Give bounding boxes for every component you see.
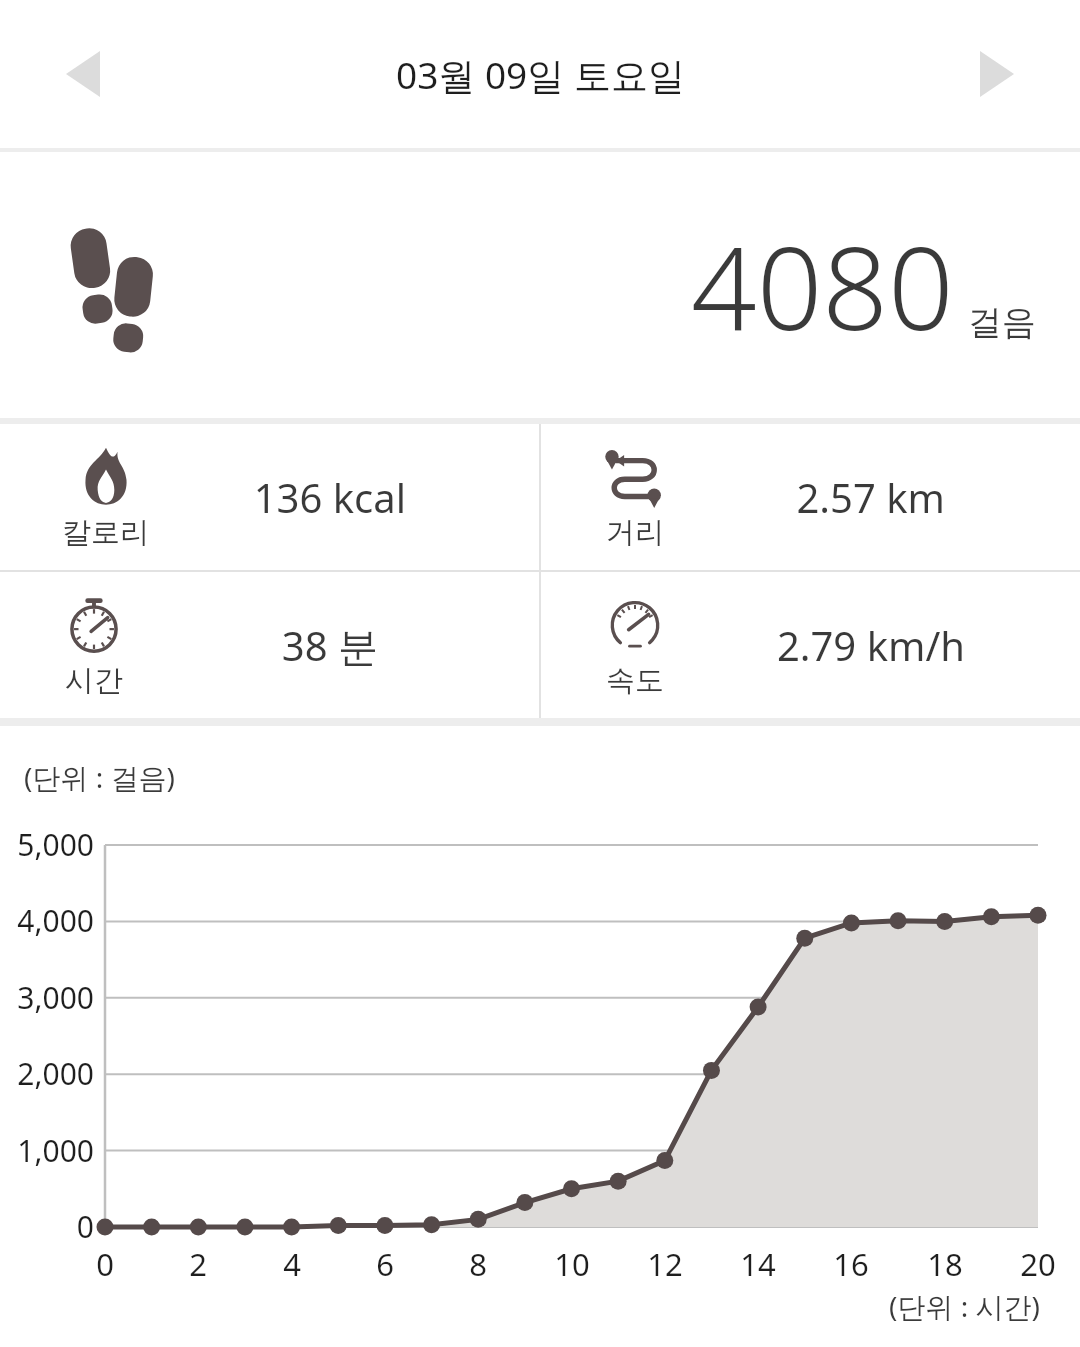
staticText: 칼로리 [62, 514, 149, 551]
staticText: 1,000 [8, 1130, 94, 1171]
staticText: 시간 [65, 662, 123, 699]
staticText: 12 [625, 1243, 705, 1285]
staticText: 속도 [606, 662, 664, 699]
staticText: 4 [252, 1243, 332, 1285]
staticText: (단위 : 시간) [889, 1287, 1040, 1325]
staticText: 136 kcal [253, 470, 406, 524]
staticText: 38 분 [281, 618, 378, 673]
staticText: 20 [998, 1243, 1078, 1285]
button[interactable]: 거리 [541, 424, 1080, 570]
button[interactable]: Previous day [40, 31, 126, 117]
button[interactable]: 칼로리 [0, 424, 539, 570]
staticText: 3,000 [8, 977, 94, 1018]
staticText: 4080 [691, 207, 954, 364]
staticText: 2.57 km [796, 470, 945, 524]
button[interactable]: 4080 [0, 152, 1080, 418]
staticText: 8 [438, 1243, 518, 1285]
staticText: 14 [718, 1243, 798, 1285]
staticText: 0 [65, 1243, 145, 1285]
button[interactable]: Next day [954, 31, 1040, 117]
staticText: (단위 : 걸음) [24, 758, 175, 796]
button[interactable]: 시간 [0, 572, 539, 718]
button[interactable]: 속도 [541, 572, 1080, 718]
staticText: 걸음 [968, 301, 1036, 344]
staticText: 거리 [606, 514, 664, 551]
staticText: 2.79 km/h [776, 618, 965, 672]
staticText: 18 [905, 1243, 985, 1285]
staticText: 03월 09일 토요일 [396, 49, 685, 100]
staticText: 0 [8, 1206, 94, 1247]
staticText: 10 [532, 1243, 612, 1285]
staticText: 6 [345, 1243, 425, 1285]
staticText: 16 [811, 1243, 891, 1285]
staticText: 2,000 [8, 1053, 94, 1094]
staticText: 5,000 [8, 824, 94, 865]
staticText: 2 [158, 1243, 238, 1285]
staticText: 4,000 [8, 900, 94, 941]
